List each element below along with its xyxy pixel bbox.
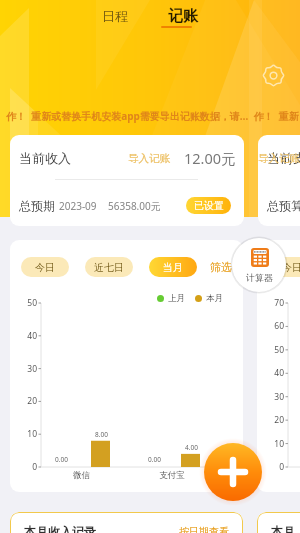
button[interactable]: 筛选 [210, 256, 232, 278]
staticText: 已设置 [194, 199, 224, 212]
button[interactable]: 今日 [21, 257, 69, 277]
staticText: 20 [274, 414, 284, 426]
staticText: 当月 [163, 261, 183, 274]
staticText: 今日 [35, 261, 55, 274]
staticText: 56358.00元 [108, 199, 161, 213]
button[interactable]: 当前支出 [258, 135, 300, 226]
staticText: 2023-09 [59, 199, 97, 213]
staticText: 日程 [102, 8, 128, 24]
staticText: 20 [27, 395, 37, 407]
button[interactable]: 本月收入记录 [257, 512, 300, 533]
button[interactable]: 近七日 [85, 257, 133, 277]
staticText: 筛选 [210, 260, 232, 274]
staticText: 当前支出 [267, 150, 300, 166]
staticText: 本月收入记录 [271, 524, 296, 533]
staticText: 0 [32, 461, 37, 473]
button[interactable]: 日程 [92, 4, 138, 28]
staticText: 计算器 [246, 272, 273, 283]
staticText: 40 [27, 330, 37, 342]
staticText: 50 [27, 297, 37, 309]
staticText: 0 [279, 461, 284, 473]
staticText: 50 [274, 344, 284, 356]
staticText: 本月收入记录 [24, 524, 96, 533]
button[interactable]: 当月 [149, 257, 197, 277]
staticText: 8.00 [95, 430, 108, 439]
staticText: 近七日 [94, 261, 124, 274]
staticText: 今日 [282, 261, 300, 274]
staticText: 本月 [206, 293, 223, 304]
staticText: 上月 [168, 293, 185, 304]
staticText: 记账 [168, 7, 198, 26]
button[interactable]: 导入记账 [128, 152, 170, 165]
staticText: 0.00 [55, 455, 68, 464]
staticText: 总预期 [19, 198, 55, 213]
staticText: 按日期查看 [179, 525, 229, 533]
staticText: 4.00 [185, 443, 198, 452]
button[interactable]: 已设置 [186, 197, 231, 214]
staticText: 作！ 重新或替换手机安装app需要导出记账数据，请… 作！ 重新 [6, 109, 299, 123]
button[interactable]: 设置 [261, 63, 286, 88]
staticText: 12.00元 [184, 148, 236, 168]
staticText: 40 [274, 367, 284, 379]
staticText: 10 [274, 438, 284, 450]
staticText: 微信 [73, 470, 90, 481]
button[interactable]: 本月收入记录 [10, 512, 243, 533]
staticText: 总预算 [267, 198, 300, 213]
staticText: 30 [274, 391, 284, 403]
staticText: 10 [27, 428, 37, 440]
staticText: 30 [27, 363, 37, 375]
staticText: 70 [274, 297, 284, 309]
button[interactable]: 记账 [158, 3, 208, 30]
button[interactable]: 导入记账 [258, 152, 300, 165]
staticText: 支付宝 [159, 470, 185, 481]
button[interactable]: 添加记账 [204, 443, 262, 501]
staticText: 0.00 [148, 455, 161, 464]
button[interactable]: 计算器 [232, 238, 286, 292]
staticText: 当前收入 [19, 150, 71, 166]
staticText: 60 [274, 320, 284, 332]
button[interactable]: 今日 [268, 257, 300, 277]
button[interactable]: 当前收入 [10, 135, 244, 226]
